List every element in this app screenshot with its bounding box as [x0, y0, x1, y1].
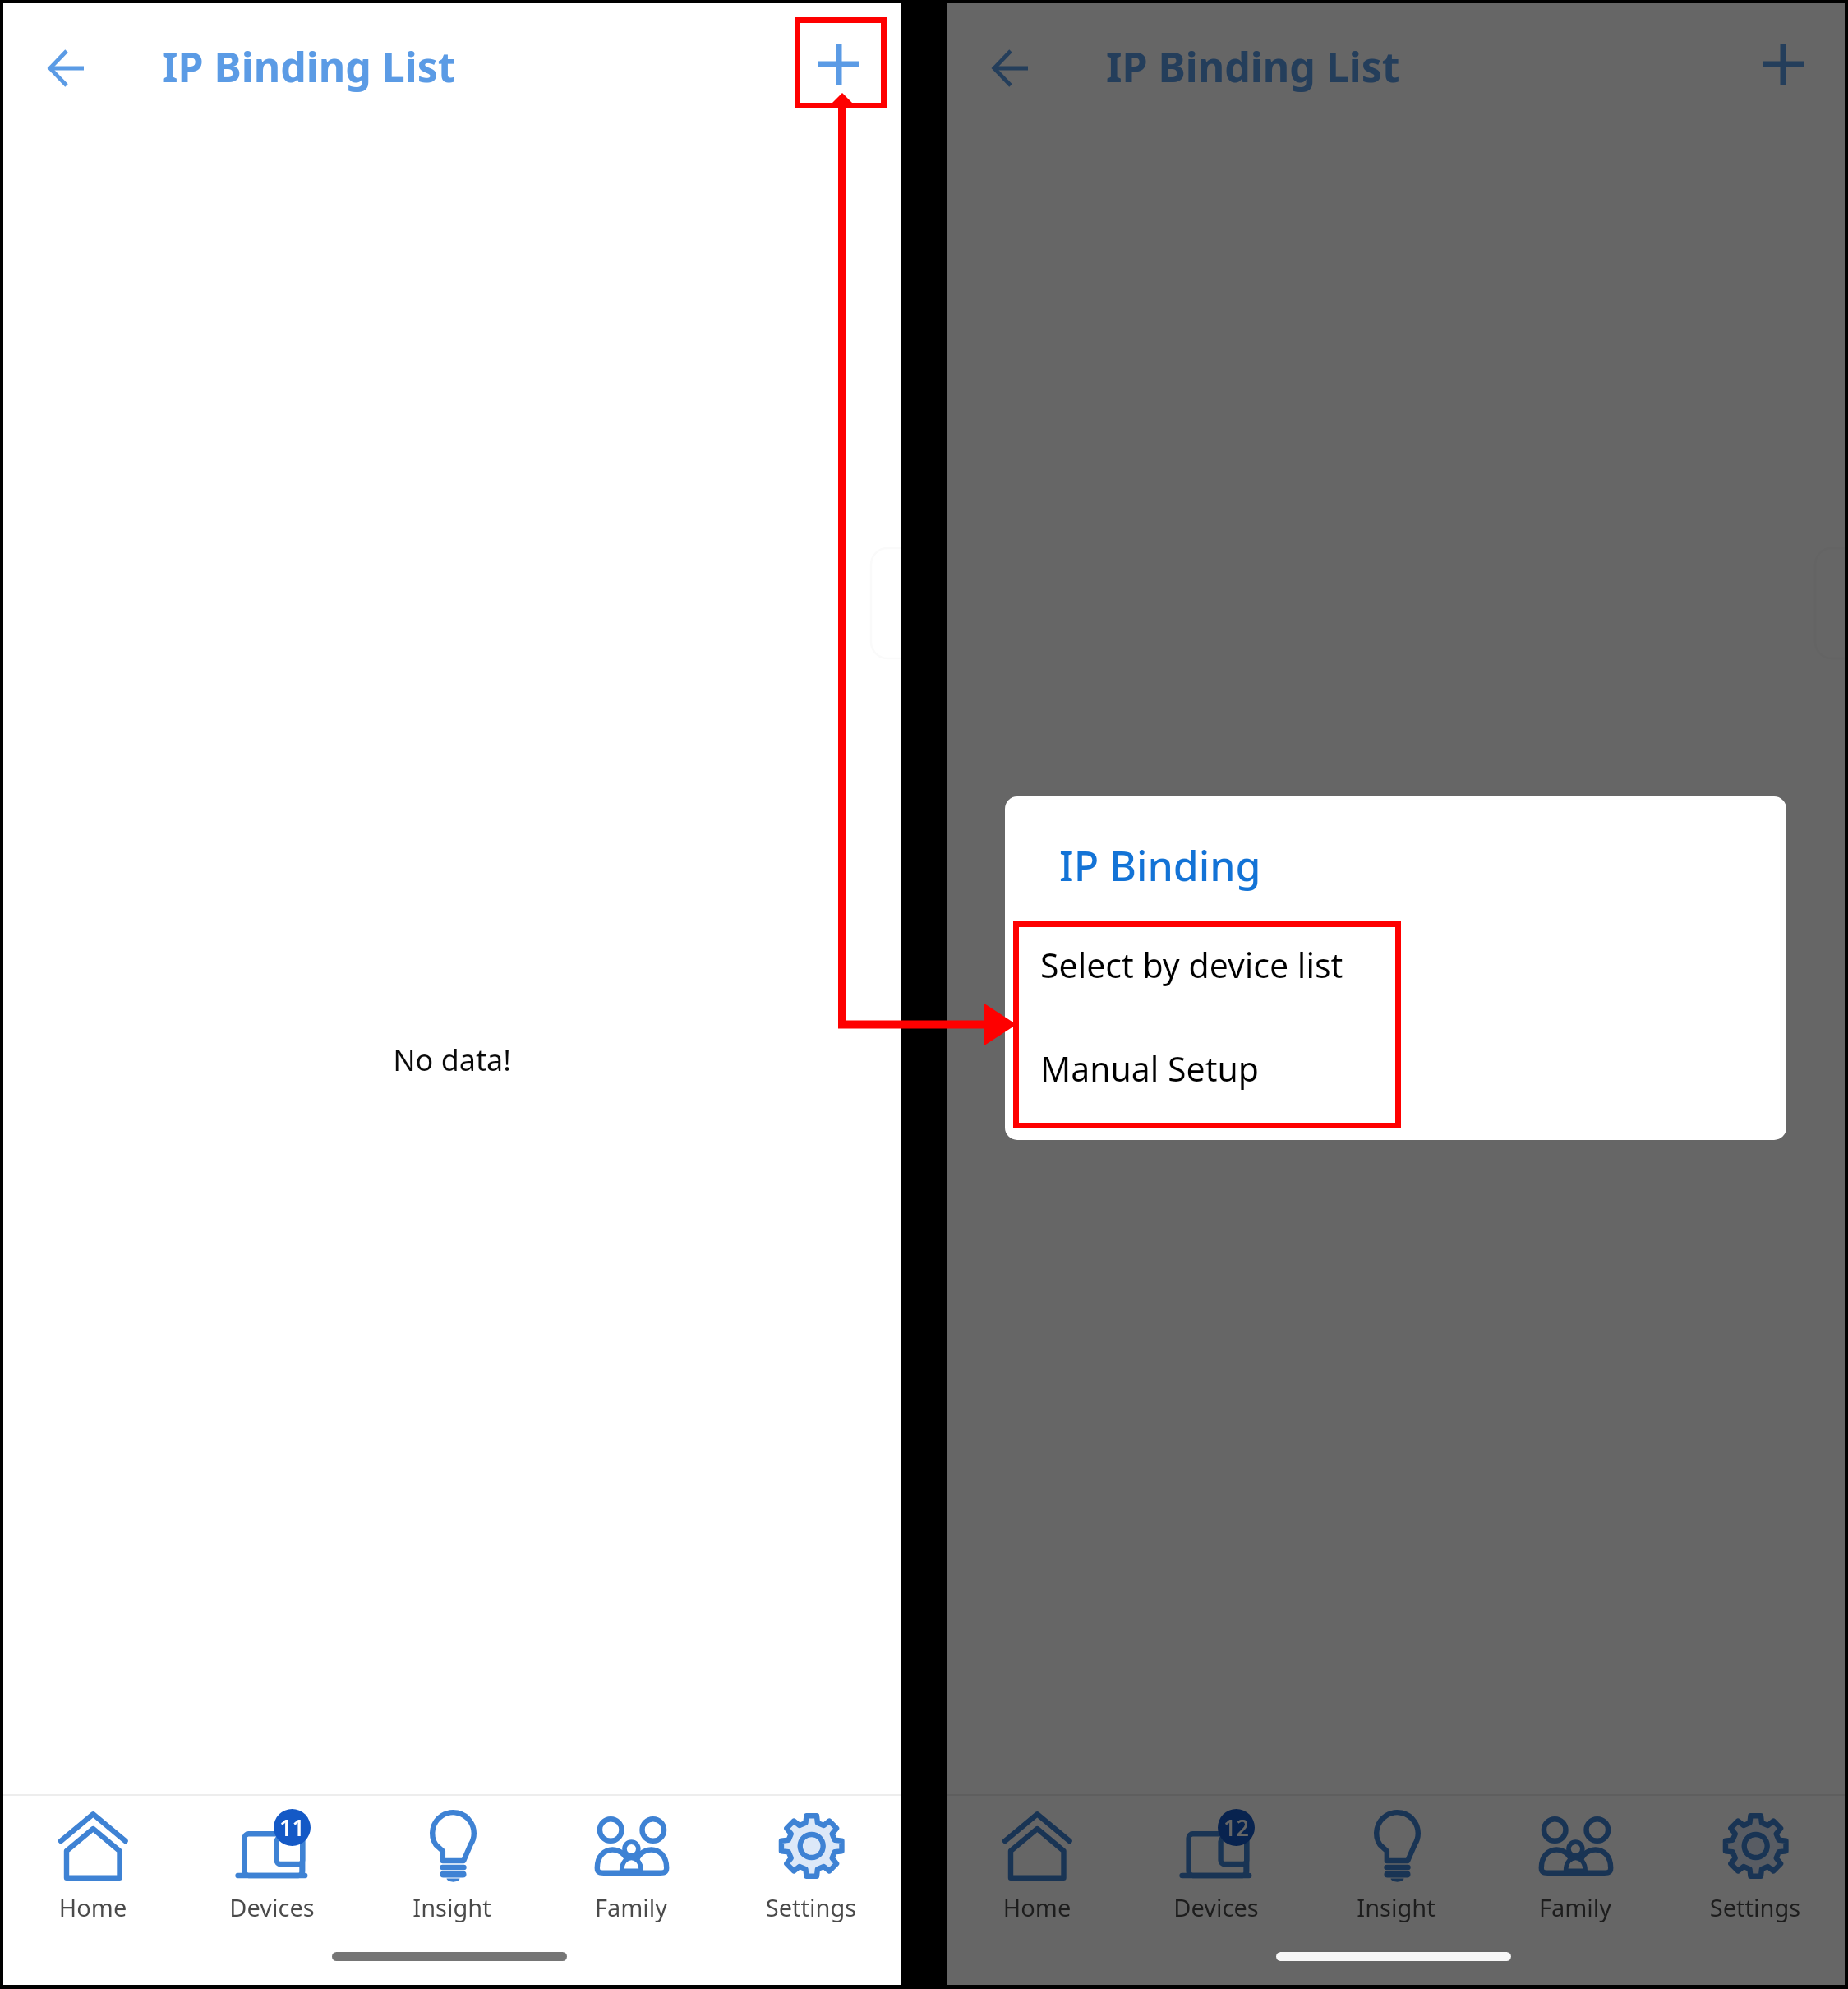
staticText: Family — [541, 1891, 721, 1923]
staticText: IP Binding List — [162, 39, 456, 95]
button[interactable]: 12 — [1127, 1796, 1306, 1931]
staticText: Home — [947, 1891, 1127, 1923]
staticText: IP Binding List — [1106, 39, 1400, 95]
staticText: Insight — [362, 1891, 541, 1923]
staticText: No data! — [947, 1040, 1845, 1080]
staticText: Home — [3, 1891, 182, 1923]
button[interactable]: Select by device list — [1005, 921, 1786, 1025]
staticText: Settings — [1666, 1891, 1845, 1923]
button[interactable]: Family — [1486, 1796, 1665, 1931]
staticText: Devices — [182, 1891, 362, 1923]
button[interactable]: Family — [541, 1796, 721, 1931]
staticText: IP Binding — [1059, 838, 1261, 893]
button[interactable]: Back — [970, 27, 1052, 109]
button[interactable]: Home — [3, 1796, 182, 1931]
staticText: 12 — [1224, 1812, 1249, 1843]
button[interactable]: Insight — [362, 1796, 541, 1931]
staticText: No data! — [3, 1040, 901, 1080]
button[interactable]: Settings — [721, 1796, 901, 1931]
button[interactable]: Settings — [1666, 1796, 1845, 1931]
button[interactable]: Add IP binding — [798, 23, 880, 105]
staticText: Select by device list — [1040, 942, 1343, 988]
button[interactable]: Back — [25, 27, 108, 109]
staticText: Devices — [1127, 1891, 1306, 1923]
button[interactable]: Add IP binding — [1742, 23, 1824, 105]
staticText: 11 — [279, 1812, 305, 1843]
staticText: Manual Setup — [1040, 1045, 1260, 1091]
staticText: Family — [1486, 1891, 1665, 1923]
button[interactable]: Home — [947, 1796, 1127, 1931]
button[interactable]: 11 — [182, 1796, 362, 1931]
button[interactable]: Insight — [1307, 1796, 1486, 1931]
staticText: Settings — [721, 1891, 901, 1923]
staticText: Insight — [1307, 1891, 1486, 1923]
button[interactable]: Manual Setup — [1005, 1025, 1786, 1128]
